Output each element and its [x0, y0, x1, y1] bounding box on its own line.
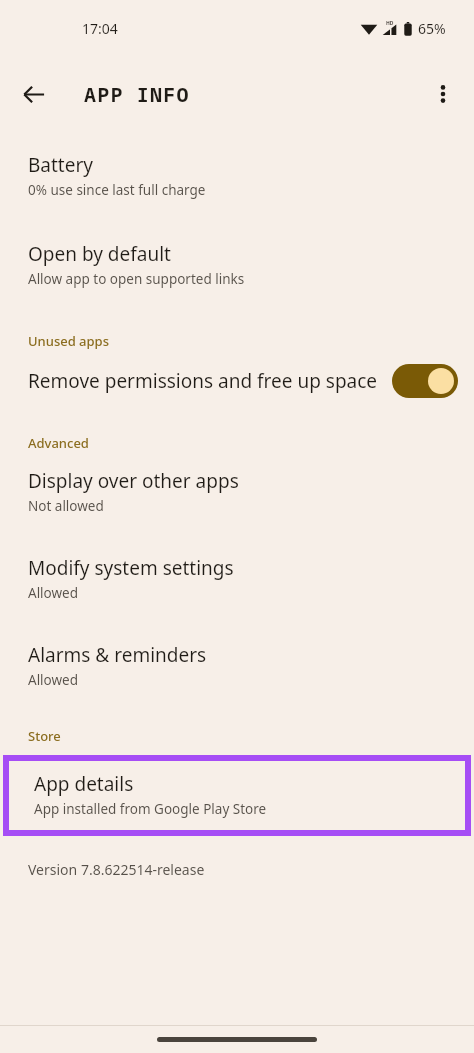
button[interactable]: Modify system settings [0, 555, 474, 602]
staticText: Modify system settings [28, 555, 234, 581]
staticText: Version 7.8.622514-release [28, 860, 205, 879]
staticText: 0% use since last full charge [28, 181, 206, 199]
staticText: 17:04 [82, 19, 118, 38]
staticText: Not allowed [28, 497, 104, 515]
button[interactable]: Display over other apps [0, 468, 474, 515]
staticText: HD [386, 20, 394, 27]
staticText: Allow app to open supported links [28, 270, 245, 288]
staticText: App details [34, 771, 134, 797]
staticText: 65% [418, 19, 446, 38]
staticText: Allowed [28, 584, 79, 602]
staticText: App installed from Google Play Store [34, 800, 267, 818]
button[interactable]: App details [9, 761, 465, 830]
staticText: Advanced [28, 434, 89, 452]
button[interactable]: More options [420, 71, 466, 117]
staticText: Display over other apps [28, 468, 239, 494]
button[interactable]: Remove permissions and free up space [0, 364, 474, 398]
staticText: Unused apps [28, 332, 109, 350]
staticText: Remove permissions and free up space [28, 368, 378, 394]
staticText: Battery [28, 152, 93, 178]
staticText: Open by default [28, 241, 171, 267]
staticText: Allowed [28, 671, 79, 689]
staticText: Store [28, 727, 61, 745]
staticText: APP INFO [84, 81, 190, 108]
button[interactable]: Battery [0, 152, 474, 199]
button[interactable]: Alarms & reminders [0, 642, 474, 689]
button[interactable]: Remove permissions toggle [392, 364, 458, 398]
button[interactable]: Back [10, 71, 56, 117]
staticText: Alarms & reminders [28, 642, 207, 668]
button[interactable]: Open by default [0, 241, 474, 288]
